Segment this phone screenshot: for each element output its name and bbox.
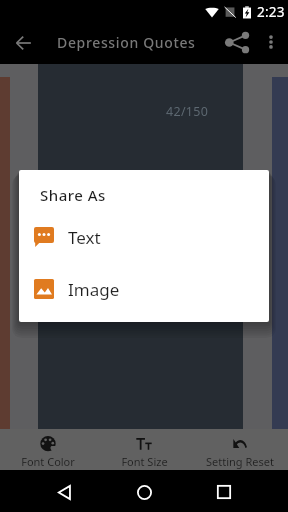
button[interactable]: Share (216, 24, 259, 64)
button[interactable]: Font Color (0, 429, 96, 470)
staticText: Font Size (121, 454, 168, 469)
button[interactable]: Recents (203, 471, 245, 512)
staticText: Image (68, 278, 120, 301)
button[interactable]: Text (19, 211, 269, 263)
staticText: Share As (40, 185, 106, 205)
staticText: Font Color (21, 454, 75, 469)
button[interactable]: Home (123, 471, 165, 512)
staticText: 2:23 (257, 3, 285, 21)
button[interactable]: Back (43, 471, 85, 512)
button[interactable]: Image (19, 263, 269, 315)
button[interactable]: More options (259, 24, 288, 64)
staticText: 42/150 (166, 103, 209, 120)
button[interactable]: Setting Reset (192, 429, 288, 470)
staticText: Setting Reset (206, 454, 274, 469)
button[interactable]: Font Size (96, 429, 192, 470)
button[interactable]: Back (0, 24, 46, 64)
staticText: Depression Quotes (57, 33, 196, 52)
staticText: Text (68, 226, 101, 249)
